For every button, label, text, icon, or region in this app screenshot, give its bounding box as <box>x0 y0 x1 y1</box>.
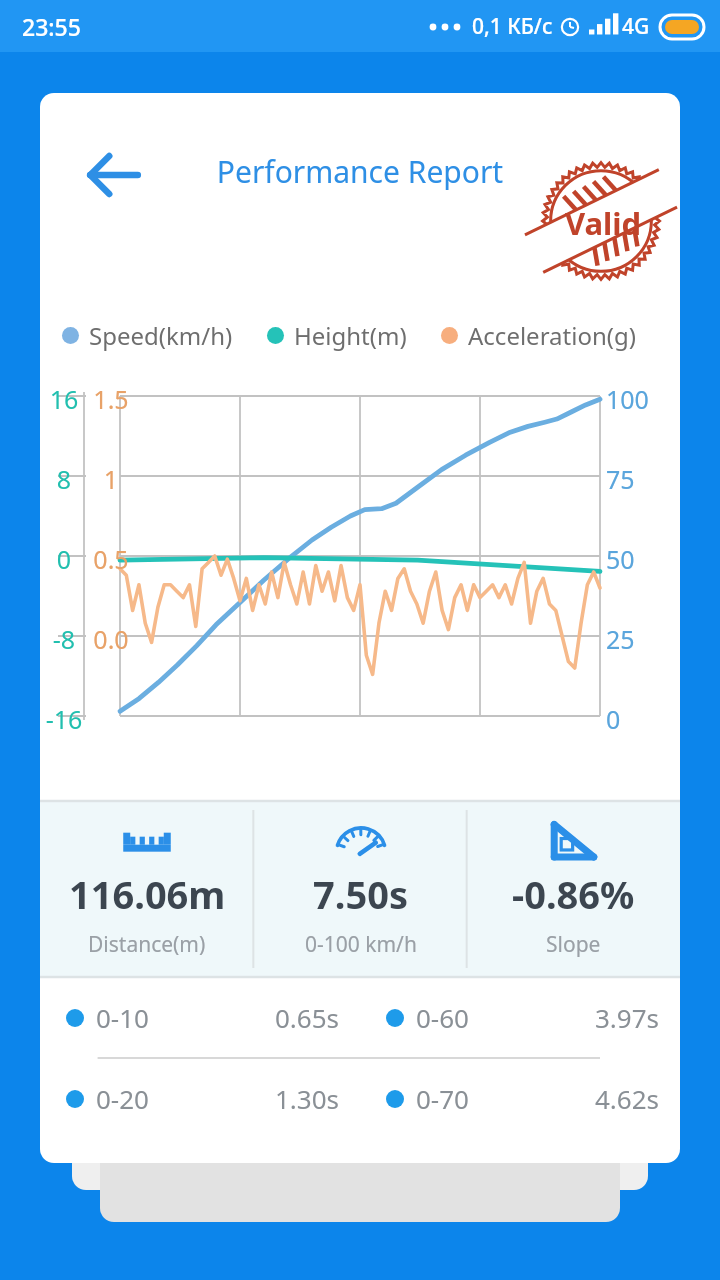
staticText: 116.06m <box>69 868 226 920</box>
staticText: 0 <box>606 702 621 736</box>
staticText: 0,1 КБ/с <box>472 12 553 41</box>
staticText: Slope <box>546 930 601 959</box>
staticText: Speed(km/h) <box>89 319 233 352</box>
staticText: 8 <box>44 462 84 496</box>
button[interactable]: 0-10 <box>40 978 360 1057</box>
staticText: -16 <box>44 702 84 736</box>
button[interactable]: -0.86% <box>467 800 680 978</box>
staticText: 16 <box>44 382 84 416</box>
button[interactable]: 116.06m <box>40 800 254 978</box>
staticText: 100 <box>606 382 649 416</box>
staticText: Distance(m) <box>88 930 206 959</box>
staticText: 50 <box>606 542 635 576</box>
staticText: 23:55 <box>22 11 81 42</box>
staticText: 25 <box>606 622 635 656</box>
staticText: 0-70 <box>416 1081 469 1116</box>
staticText: 3.97s <box>595 1000 660 1035</box>
staticText: Acceleration(g) <box>468 319 636 352</box>
button[interactable]: 7.50s <box>254 800 467 978</box>
staticText: Valid <box>565 202 642 244</box>
staticText: 1 <box>88 462 134 496</box>
staticText: 75 <box>606 462 635 496</box>
staticText: 0.5 <box>88 542 134 576</box>
staticText: 0.65s <box>275 1000 340 1035</box>
staticText: -8 <box>44 622 84 656</box>
button[interactable]: 0-60 <box>360 978 680 1057</box>
staticText: 0-10 <box>96 1000 149 1035</box>
staticText: -0.86% <box>512 868 635 920</box>
button[interactable]: Back <box>78 141 146 209</box>
staticText: 4G <box>622 12 650 41</box>
button[interactable]: 0-20 <box>40 1059 360 1138</box>
button[interactable]: 0-70 <box>360 1059 680 1138</box>
staticText: 1.5 <box>88 382 134 416</box>
staticText: 0-100 km/h <box>305 930 417 959</box>
staticText: 1.30s <box>275 1081 340 1116</box>
staticText: 0-20 <box>96 1081 149 1116</box>
staticText: Height(m) <box>294 319 407 352</box>
staticText: Performance Report <box>210 151 510 192</box>
staticText: 4.62s <box>595 1081 660 1116</box>
staticText: 0.0 <box>88 622 134 656</box>
staticText: 0-60 <box>416 1000 469 1035</box>
staticText: 0 <box>44 542 84 576</box>
staticText: 7.50s <box>313 868 408 920</box>
